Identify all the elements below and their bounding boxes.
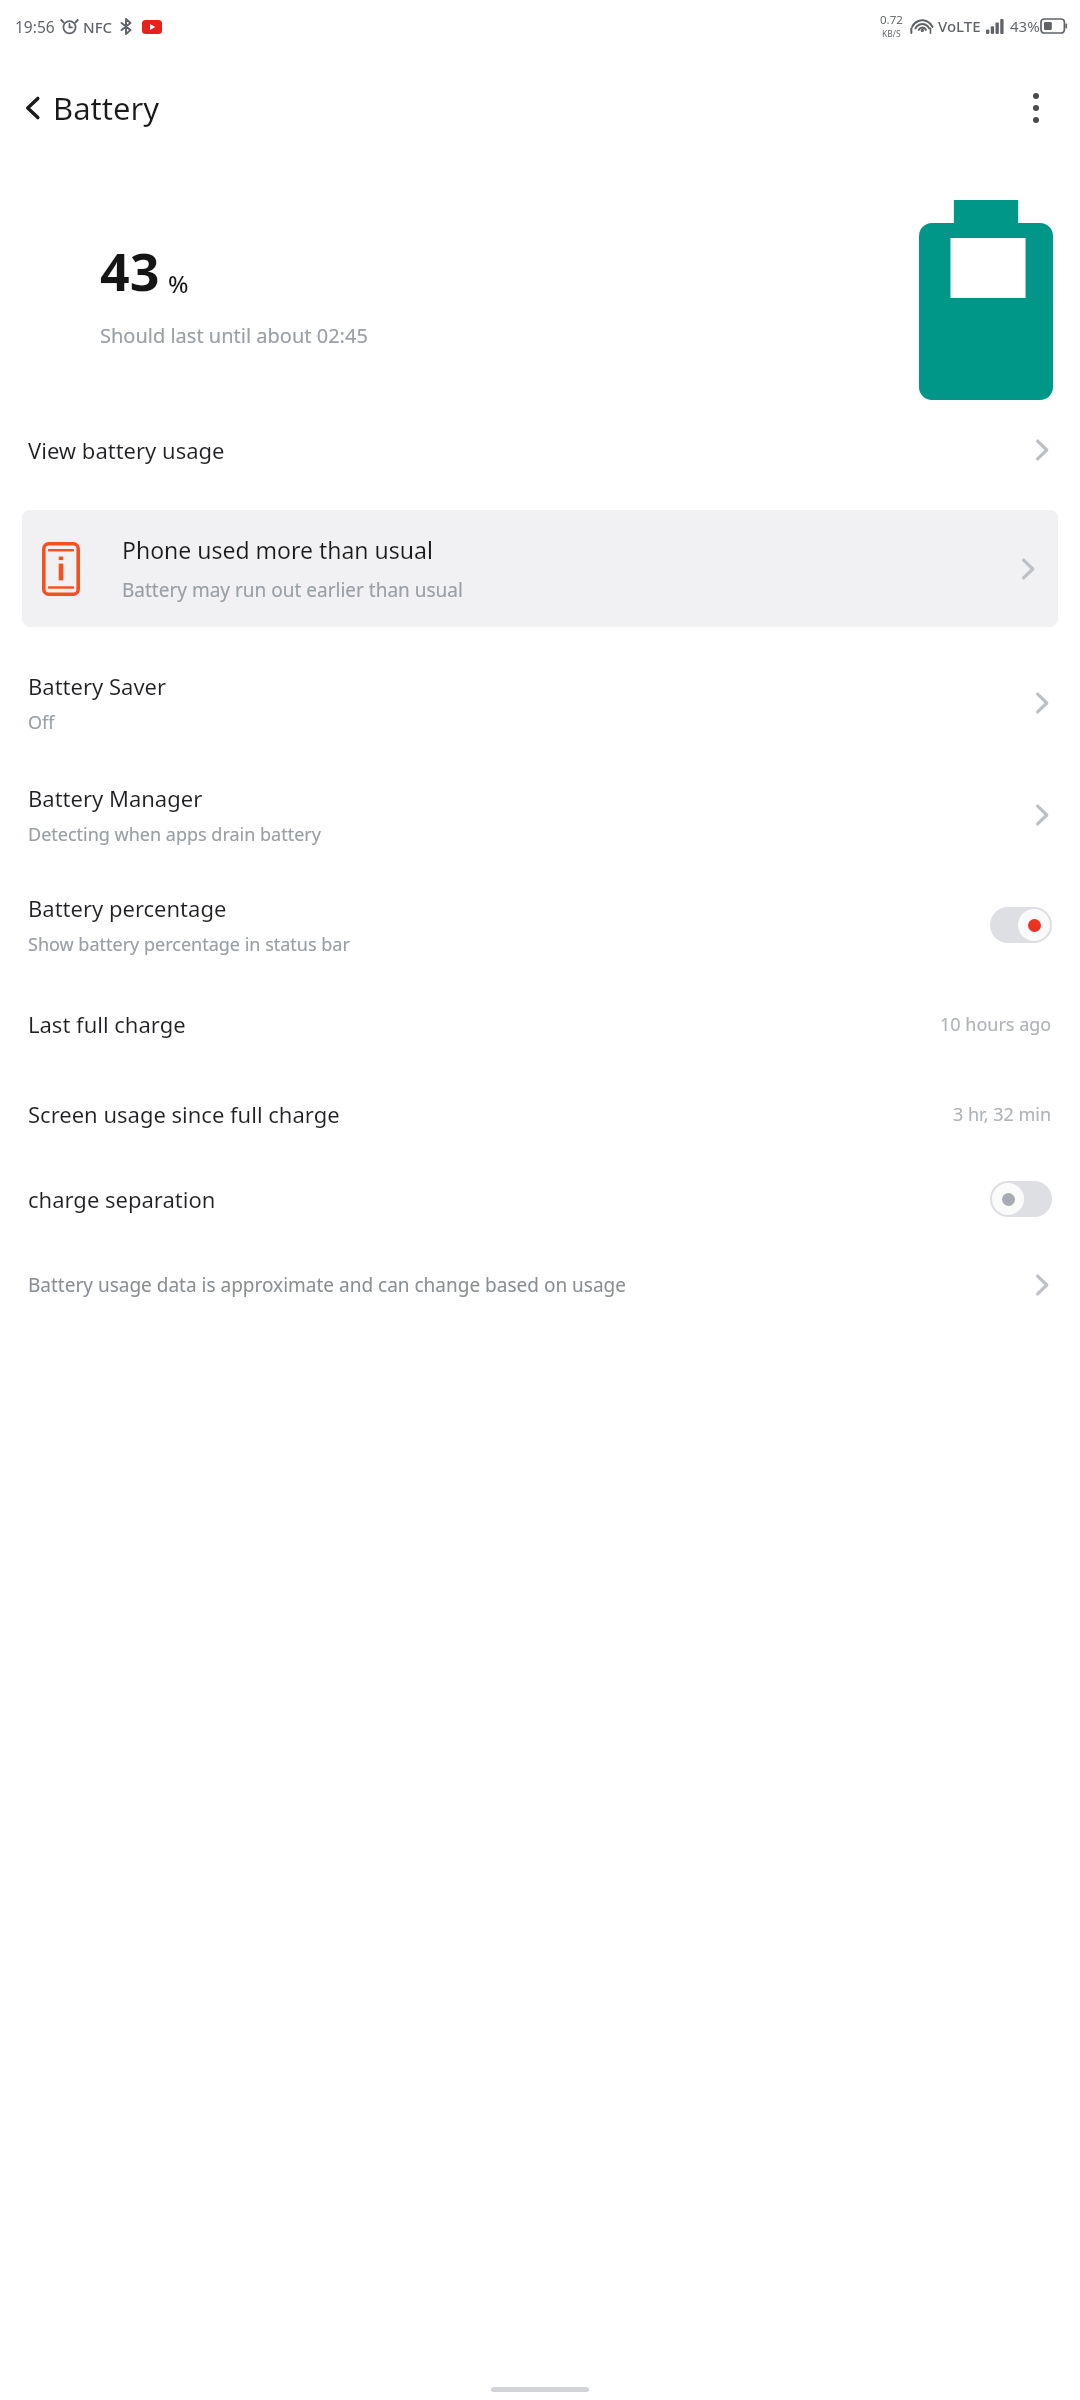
button[interactable]: charge separation [0,1159,1080,1239]
staticText: Phone used more than usual [122,534,433,565]
button[interactable]: Last full charge [0,979,1080,1069]
staticText: 10 hours ago [940,1012,1052,1037]
staticText: 43 [100,235,160,306]
button[interactable]: Battery Manager [0,759,1080,871]
button[interactable]: View battery usage [0,412,1080,488]
button[interactable]: More options [1012,84,1060,132]
button[interactable]: Back [18,81,164,135]
staticText: Battery Saver [28,671,167,701]
button[interactable]: Battery percentage [0,871,1080,979]
staticText: NFC [83,17,113,37]
staticText: KB/S [882,28,901,40]
button[interactable]: Screen usage since full charge [0,1069,1080,1159]
button[interactable]: Phone used more than usual [22,510,1058,627]
staticText: 3 hr, 32 min [953,1102,1052,1127]
staticText: % [168,267,189,300]
staticText: Battery may run out earlier than usual [122,577,463,603]
staticText: Show battery percentage in status bar [28,932,350,957]
staticText: Battery percentage [28,893,227,923]
staticText: Should last until about 02:45 [100,322,368,349]
button[interactable]: Battery Saver [0,647,1080,759]
staticText: charge separation [28,1184,216,1214]
staticText: Battery usage data is approximate and ca… [28,1272,996,1298]
button[interactable]: Off [990,1181,1052,1217]
staticText: View battery usage [28,435,1032,465]
button[interactable]: Battery usage data is approximate and ca… [0,1255,1080,1315]
staticText: VoLTE [938,16,981,36]
staticText: Detecting when apps drain battery [28,822,321,847]
staticText: Battery [53,87,160,129]
staticText: 0.72 [880,12,903,28]
staticText: Battery Manager [28,783,203,813]
staticText: Last full charge [28,1009,940,1039]
staticText: 43% [1010,16,1040,36]
button[interactable]: On [990,907,1052,943]
staticText: Off [28,710,55,735]
staticText: Screen usage since full charge [28,1099,953,1129]
staticText: 19:56 [15,16,55,37]
